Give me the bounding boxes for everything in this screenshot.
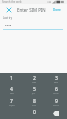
staticText: 7	[10, 98, 13, 105]
staticText: WXYZ	[53, 104, 59, 107]
staticText: 4	[10, 86, 13, 93]
button[interactable]: 5	[23, 84, 45, 95]
button[interactable]: Backspace	[45, 107, 67, 119]
staticText: 2	[33, 75, 36, 82]
staticText: Enter SIM PIN	[17, 7, 46, 13]
staticText: TUV	[32, 104, 37, 107]
button[interactable]: 9	[45, 95, 67, 107]
button[interactable]: 0	[23, 107, 45, 119]
staticText: 9	[55, 98, 58, 105]
staticText: PQRS	[9, 104, 15, 107]
staticText: Done	[53, 8, 61, 12]
button[interactable]: 8	[23, 95, 45, 107]
button[interactable]: Done	[50, 4, 67, 16]
button[interactable]: 7	[0, 95, 23, 107]
staticText: Last try	[3, 16, 12, 20]
staticText: 8	[33, 98, 36, 105]
button[interactable]: Close	[0, 4, 17, 16]
staticText: 6	[55, 86, 58, 93]
staticText: 5	[33, 86, 36, 93]
staticText: MNO	[53, 92, 59, 95]
button[interactable]: 1	[0, 73, 23, 84]
staticText: DEF	[54, 81, 58, 84]
button[interactable]: 6	[45, 84, 67, 95]
staticText: GHI	[10, 92, 14, 95]
button[interactable]: 3	[45, 73, 67, 84]
staticText: 1	[10, 75, 13, 82]
staticText: 3	[55, 75, 58, 82]
staticText: ••••	[5, 23, 12, 29]
staticText: Search the web	[2, 0, 22, 4]
button[interactable]: 4	[0, 84, 23, 95]
button[interactable]: 2	[23, 73, 45, 84]
staticText: ABC	[32, 81, 37, 84]
staticText: JKL	[32, 92, 36, 95]
staticText: 0	[33, 109, 36, 116]
